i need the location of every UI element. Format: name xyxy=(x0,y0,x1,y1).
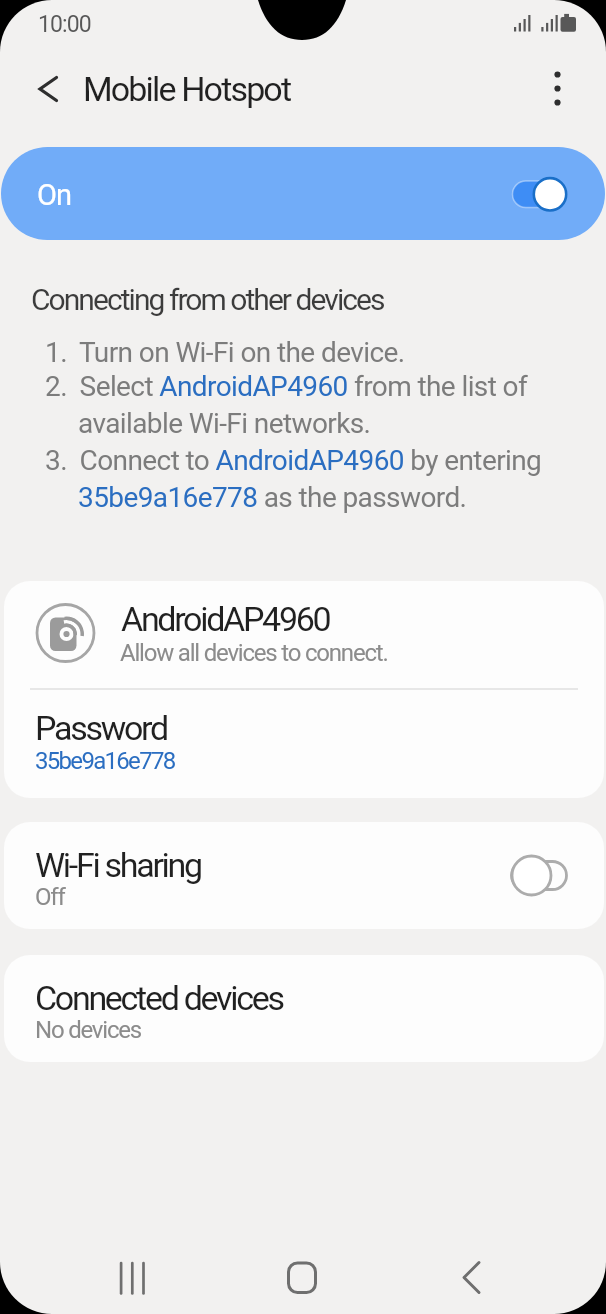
staticText: 35be9a16e778 as the password. xyxy=(78,481,467,514)
staticText: On xyxy=(37,178,71,212)
staticText: AndroidAP4960 xyxy=(121,599,330,639)
staticText: 35be9a16e778 xyxy=(35,747,175,775)
staticText: available Wi-Fi networks. xyxy=(78,407,371,440)
staticText: 10:00 xyxy=(38,11,91,38)
staticText: 1. Turn on Wi-Fi on the device. xyxy=(45,336,405,369)
staticText: Allow all devices to connect. xyxy=(120,639,388,667)
staticText: 3. Connect to AndroidAP4960 by entering xyxy=(45,444,542,477)
staticText: Password xyxy=(35,708,167,748)
staticText: Connecting from other devices xyxy=(31,282,384,317)
staticText: Off xyxy=(35,883,65,911)
staticText: Wi-Fi sharing xyxy=(35,845,201,885)
staticText: 2. Select AndroidAP4960 from the list of xyxy=(45,370,528,403)
staticText: Connected devices xyxy=(35,978,283,1018)
staticText: Mobile Hotspot xyxy=(83,69,291,109)
staticText: No devices xyxy=(35,1016,142,1044)
